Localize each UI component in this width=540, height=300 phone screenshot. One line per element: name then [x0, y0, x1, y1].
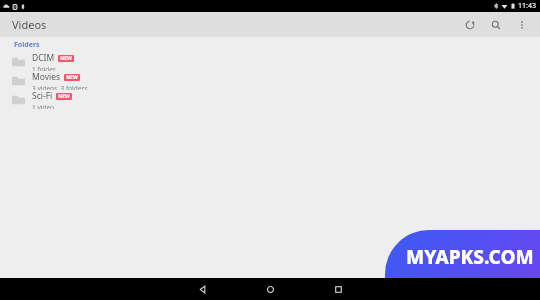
button[interactable]: Recents	[315, 278, 361, 300]
staticText: NEW	[58, 93, 70, 100]
staticText: 3 videos, 3 folders	[32, 84, 88, 90]
button[interactable]: Back	[179, 278, 225, 300]
staticText: Sci-Fi	[32, 90, 53, 102]
button[interactable]: Home	[247, 278, 293, 300]
button[interactable]: Search	[486, 15, 506, 35]
staticText: MYAPKS.COM	[406, 244, 534, 270]
staticText: 1 folder	[32, 65, 56, 71]
staticText: Movies	[32, 71, 61, 83]
staticText: Videos	[12, 17, 47, 32]
button[interactable]: Sci-Fi	[0, 90, 540, 109]
button[interactable]: DCIM	[0, 52, 540, 71]
button[interactable]: More options	[512, 15, 532, 35]
staticText: 11:43	[518, 1, 536, 11]
staticText: NEW	[60, 55, 72, 62]
staticText: DCIM	[32, 52, 55, 64]
staticText: 1 video	[32, 103, 54, 109]
staticText: Folders	[14, 40, 40, 50]
button[interactable]: Movies	[0, 71, 540, 90]
staticText: NEW	[66, 74, 78, 81]
button[interactable]: Refresh	[460, 15, 480, 35]
